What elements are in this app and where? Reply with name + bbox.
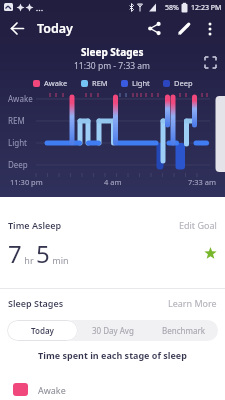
staticText: 7 — [8, 237, 22, 270]
staticText: REM — [8, 115, 25, 126]
button[interactable] — [171, 15, 197, 42]
button[interactable]: Today — [7, 320, 78, 341]
staticText: 12:23 PM — [191, 3, 222, 13]
staticText: Deep — [8, 159, 28, 170]
button[interactable] — [141, 15, 167, 42]
staticText: Deep — [174, 78, 193, 88]
staticText: Time Asleep — [8, 219, 62, 231]
staticText: Learn More — [168, 297, 217, 309]
staticText: Today — [31, 325, 54, 336]
staticText: Light — [132, 78, 150, 88]
staticText: 58% — [165, 3, 179, 13]
button[interactable] — [204, 247, 217, 260]
staticText: 11:30 pm — [10, 177, 43, 187]
staticText: Today — [37, 20, 73, 37]
staticText: Time spent in each stage of sleep — [0, 349, 225, 361]
staticText: hr — [22, 254, 36, 266]
button[interactable]: Awake — [0, 383, 225, 396]
staticText: Edit Goal — [179, 219, 217, 231]
staticText: Light — [8, 137, 28, 148]
button[interactable]: Edit Goal — [179, 219, 217, 231]
button[interactable] — [205, 57, 216, 68]
button[interactable]: Learn More — [168, 297, 217, 309]
staticText: REM — [92, 78, 108, 88]
button[interactable] — [0, 15, 34, 42]
staticText: Benchmark — [162, 325, 205, 336]
staticText: Awake — [38, 384, 66, 396]
staticText: 11:30 pm - 7:33 am — [74, 60, 151, 72]
button[interactable]: 30 Day Avg — [78, 320, 148, 341]
button[interactable]: Benchmark — [148, 320, 218, 341]
staticText: 4 am — [104, 177, 122, 187]
staticText: Awake — [44, 78, 68, 88]
staticText: 30 Day Avg — [92, 325, 134, 336]
staticText: Sleep Stages — [8, 297, 64, 309]
staticText: 7:33 am — [188, 177, 217, 187]
button[interactable] — [199, 15, 221, 42]
staticText: Awake — [8, 93, 33, 104]
staticText: Sleep Stages — [81, 45, 144, 59]
staticText: min — [50, 254, 69, 266]
staticText: 5 — [36, 237, 50, 270]
